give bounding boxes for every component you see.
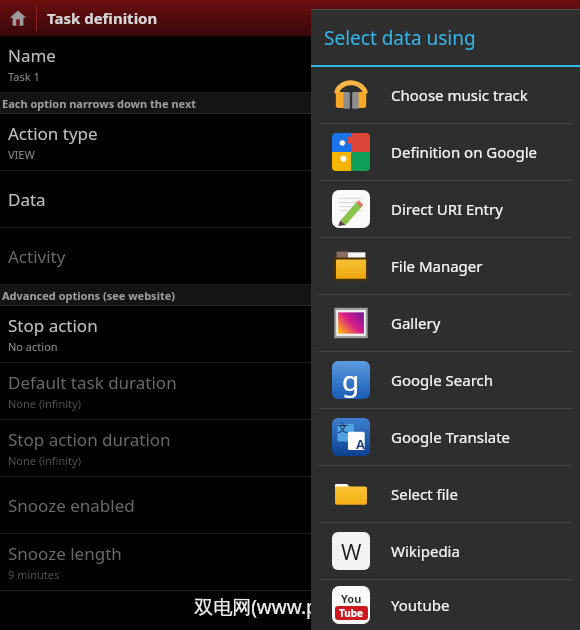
staticText: Youtube <box>391 595 450 615</box>
button[interactable]: Name <box>0 36 580 93</box>
button[interactable]: g <box>311 352 580 408</box>
staticText: File Manager <box>391 256 483 276</box>
staticText: Gallery <box>391 313 441 333</box>
staticText: You <box>341 591 362 606</box>
staticText: W <box>341 536 362 566</box>
button[interactable]: File Manager <box>311 238 580 294</box>
staticText: Choose music track <box>391 85 528 105</box>
button[interactable]: Gallery <box>311 295 580 351</box>
staticText: Each option narrows down the next <box>2 96 197 111</box>
button[interactable]: A <box>311 409 580 465</box>
staticText: Activity <box>8 245 66 268</box>
staticText: No action <box>8 339 58 354</box>
button[interactable]: Default task duration <box>0 363 580 420</box>
staticText: Tube <box>339 606 364 620</box>
staticText: Definition on Google <box>391 142 537 162</box>
staticText: Stop action <box>8 314 98 337</box>
button[interactable]: Activity <box>0 228 580 285</box>
staticText: Select data using <box>324 25 476 51</box>
button[interactable]: Action type <box>0 114 580 171</box>
button[interactable]: Stop action <box>0 306 580 363</box>
staticText: Snooze enabled <box>8 494 135 517</box>
staticText: Data <box>8 188 46 211</box>
staticText: Default task duration <box>8 371 177 394</box>
staticText: Action type <box>8 122 98 145</box>
staticText: 文 <box>337 421 348 435</box>
staticText: Google Search <box>391 370 494 390</box>
staticText: Task definition <box>47 8 158 28</box>
staticText: 双电网(www.pcpc.me) <box>194 594 387 620</box>
staticText: Snooze length <box>8 542 122 565</box>
button[interactable]: Snooze enabled <box>0 477 580 534</box>
button[interactable]: Direct URI Entry <box>311 181 580 237</box>
staticText: None (infinity) <box>8 396 81 411</box>
staticText: Advanced options (see website) <box>2 288 175 303</box>
staticText: None (infinity) <box>8 453 81 468</box>
staticText: 9 minutes <box>8 567 60 582</box>
button[interactable]: Choose music track <box>311 67 580 123</box>
button[interactable]: Data <box>0 171 580 228</box>
button[interactable]: W <box>311 523 580 579</box>
staticText: Stop action duration <box>8 428 171 451</box>
staticText: A <box>356 435 365 453</box>
staticText: Name <box>8 44 56 67</box>
button[interactable]: Snooze length <box>0 534 580 591</box>
staticText: Select file <box>391 484 458 504</box>
staticText: Wikipedia <box>391 541 460 561</box>
staticText: g <box>342 361 360 399</box>
staticText: VIEW <box>8 147 35 162</box>
staticText: Direct URI Entry <box>391 199 503 219</box>
button[interactable]: Definition on Google <box>311 124 580 180</box>
button[interactable]: You <box>311 580 580 630</box>
staticText: Task 1 <box>8 69 40 84</box>
button[interactable]: Home <box>0 0 36 36</box>
staticText: Google Translate <box>391 427 511 447</box>
button[interactable]: Stop action duration <box>0 420 580 477</box>
button[interactable]: Select file <box>311 466 580 522</box>
